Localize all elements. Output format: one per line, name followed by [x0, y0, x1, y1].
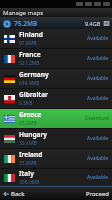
staticText: France: [19, 50, 41, 59]
staticText: Back: [11, 190, 25, 198]
button[interactable]: Finland: [0, 29, 112, 48]
button[interactable]: Hungary: [0, 129, 112, 148]
staticText: Available: [87, 55, 109, 62]
staticText: 95.2MB: [19, 120, 37, 127]
button[interactable]: Greece: [0, 109, 112, 128]
staticText: Available: [87, 95, 109, 102]
staticText: 33.8MB: [19, 160, 37, 167]
staticText: 75.2MB: [14, 19, 38, 28]
staticText: 97.8MB: [19, 40, 37, 47]
staticText: Proceed: [86, 190, 109, 198]
staticText: Manage maps: [3, 9, 44, 17]
staticText: Available: [87, 35, 109, 42]
staticText: 35.1MB: [19, 140, 37, 147]
button[interactable]: 75.2MB: [0, 17, 112, 29]
staticText: 644.9MB: [19, 80, 40, 87]
staticText: Germany: [19, 70, 49, 79]
button[interactable]: Ireland: [0, 149, 112, 168]
button[interactable]: Back: [0, 187, 30, 200]
button[interactable]: France: [0, 49, 112, 68]
staticText: Available: [87, 155, 109, 162]
staticText: Finland: [19, 30, 43, 39]
staticText: 521.2MB: [19, 60, 40, 67]
staticText: Ireland: [19, 150, 43, 159]
staticText: Available: [87, 75, 109, 82]
staticText: Available: [87, 135, 109, 142]
staticText: Download: [85, 115, 109, 122]
staticText: 9.4GB: [85, 20, 101, 27]
staticText: Gibraltar: [19, 90, 48, 99]
button[interactable]: Proceed: [81, 187, 112, 200]
button[interactable]: Germany: [0, 69, 112, 88]
staticText: Italy: [19, 169, 34, 178]
staticText: Greece: [19, 110, 42, 119]
staticText: Hungary: [19, 130, 48, 139]
staticText: 0.5KB: [19, 100, 33, 107]
button[interactable]: Italy: [0, 169, 112, 186]
button[interactable]: Gibraltar: [0, 89, 112, 108]
staticText: 306.0MB: [19, 179, 40, 186]
staticText: Available: [87, 174, 109, 181]
